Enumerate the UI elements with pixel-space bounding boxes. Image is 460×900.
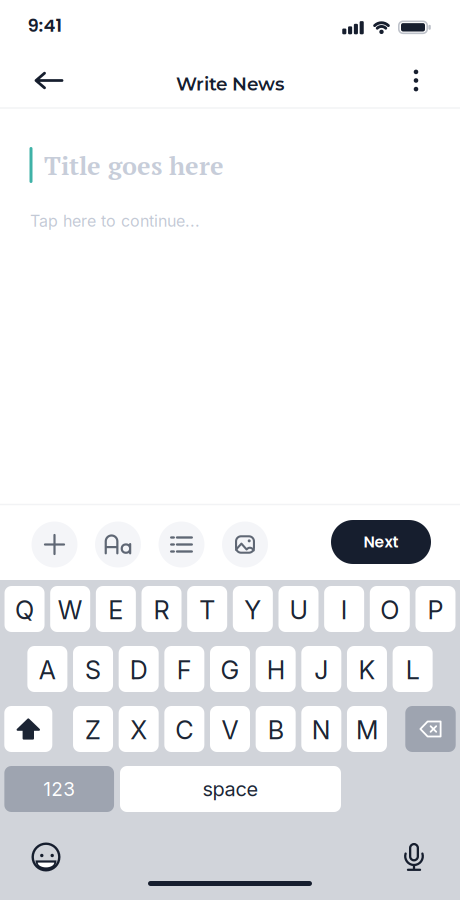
- button[interactable]: A: [27, 646, 67, 692]
- staticText: L: [406, 655, 420, 685]
- button[interactable]: Insert image: [222, 521, 268, 567]
- staticText: G: [220, 655, 239, 685]
- button[interactable]: Q: [4, 586, 44, 632]
- button[interactable]: Shift: [4, 706, 52, 752]
- button[interactable]: I: [324, 586, 364, 632]
- button[interactable]: O: [370, 586, 410, 632]
- button[interactable]: Dictation: [400, 843, 428, 871]
- button[interactable]: L: [393, 646, 433, 692]
- staticText: Z: [85, 715, 101, 745]
- staticText: U: [289, 595, 307, 625]
- button[interactable]: K: [347, 646, 387, 692]
- staticText: K: [358, 655, 375, 685]
- staticText: Y: [244, 595, 261, 625]
- staticText: E: [108, 595, 123, 625]
- button[interactable]: Delete: [405, 706, 456, 752]
- staticText: I: [341, 595, 348, 625]
- button[interactable]: M: [347, 706, 387, 752]
- staticText: J: [314, 655, 328, 685]
- button[interactable]: 123: [4, 766, 114, 812]
- button[interactable]: U: [278, 586, 318, 632]
- button[interactable]: R: [141, 586, 181, 632]
- staticText: R: [153, 595, 169, 625]
- button[interactable]: List: [158, 521, 204, 567]
- staticText: Write News: [176, 73, 284, 95]
- button[interactable]: Back: [26, 62, 72, 98]
- button[interactable]: More options: [402, 58, 430, 103]
- button[interactable]: X: [119, 706, 159, 752]
- button[interactable]: H: [256, 646, 296, 692]
- staticText: W: [58, 595, 83, 625]
- button[interactable]: P: [415, 586, 455, 632]
- staticText: H: [267, 655, 285, 685]
- staticText: A: [39, 655, 56, 685]
- button[interactable]: Emoji: [31, 842, 60, 871]
- staticText: B: [268, 715, 284, 745]
- staticText: Title goes here: [44, 149, 224, 182]
- button[interactable]: Y: [233, 586, 273, 632]
- staticText: space: [202, 777, 258, 801]
- staticText: 123: [43, 777, 75, 800]
- button[interactable]: V: [210, 706, 250, 752]
- button[interactable]: B: [256, 706, 296, 752]
- staticText: S: [85, 655, 101, 685]
- staticText: Next: [363, 531, 398, 553]
- button[interactable]: T: [187, 586, 227, 632]
- button[interactable]: W: [50, 586, 90, 632]
- staticText: O: [380, 595, 399, 625]
- button[interactable]: J: [301, 646, 341, 692]
- button[interactable]: space: [120, 766, 341, 812]
- button[interactable]: N: [301, 706, 341, 752]
- staticText: X: [130, 715, 147, 745]
- staticText: F: [177, 655, 192, 685]
- button[interactable]: D: [119, 646, 159, 692]
- staticText: 9:41: [27, 13, 62, 38]
- staticText: Q: [15, 595, 34, 625]
- staticText: C: [175, 715, 193, 745]
- button[interactable]: F: [164, 646, 204, 692]
- button[interactable]: Next: [331, 520, 431, 564]
- button[interactable]: C: [164, 706, 204, 752]
- staticText: N: [312, 715, 331, 745]
- staticText: Tap here to continue...: [30, 211, 200, 231]
- staticText: M: [356, 715, 378, 745]
- button[interactable]: S: [73, 646, 113, 692]
- button[interactable]: G: [210, 646, 250, 692]
- button[interactable]: Z: [73, 706, 113, 752]
- button[interactable]: E: [96, 586, 136, 632]
- button[interactable]: Add: [31, 521, 77, 567]
- staticText: T: [199, 595, 215, 625]
- staticText: P: [427, 595, 443, 625]
- staticText: D: [130, 655, 148, 685]
- button[interactable]: Text style: [95, 521, 141, 567]
- staticText: V: [221, 715, 238, 745]
